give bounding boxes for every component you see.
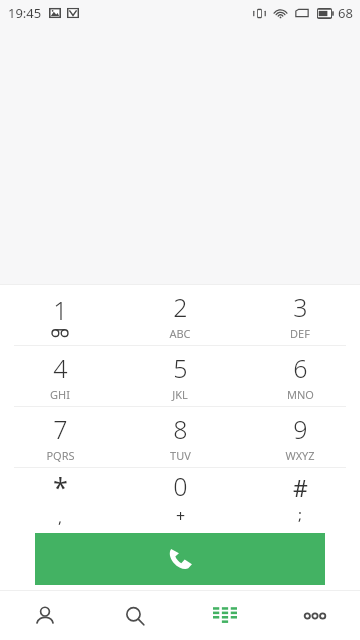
staticText: PQRS: [46, 448, 75, 463]
staticText: 3: [293, 290, 308, 324]
staticText: 8: [173, 412, 188, 446]
button[interactable]: *: [0, 468, 120, 528]
staticText: 0: [173, 469, 188, 503]
staticText: ,: [58, 507, 63, 527]
staticText: WXYZ: [285, 448, 315, 463]
staticText: MNO: [287, 387, 314, 402]
staticText: DEF: [290, 326, 310, 341]
button[interactable]: 4: [0, 346, 120, 406]
button[interactable]: 8: [120, 407, 240, 467]
staticText: *: [53, 469, 68, 506]
staticText: TUV: [170, 448, 191, 463]
button[interactable]: 9: [240, 407, 360, 467]
staticText: 4: [53, 351, 68, 385]
staticText: 6: [293, 351, 308, 385]
staticText: 9: [293, 412, 308, 446]
staticText: 7: [53, 412, 68, 446]
staticText: 5: [173, 351, 188, 385]
staticText: 19:45: [8, 4, 42, 22]
button[interactable]: Search: [90, 591, 180, 640]
button[interactable]: 5: [120, 346, 240, 406]
button[interactable]: 1: [0, 285, 120, 345]
staticText: +: [176, 505, 186, 527]
staticText: GHI: [50, 387, 70, 402]
staticText: ;: [298, 504, 303, 524]
button[interactable]: 0: [120, 468, 240, 528]
button[interactable]: #: [240, 468, 360, 528]
button[interactable]: 6: [240, 346, 360, 406]
button[interactable]: 7: [0, 407, 120, 467]
button[interactable]: Keypad: [180, 591, 270, 640]
button[interactable]: Contacts: [0, 591, 90, 640]
staticText: 2: [173, 290, 188, 324]
staticText: 1: [53, 293, 68, 327]
button[interactable]: More options: [270, 591, 360, 640]
button[interactable]: 3: [240, 285, 360, 345]
staticText: #: [293, 472, 308, 503]
button[interactable]: Call: [35, 533, 325, 585]
staticText: ABC: [169, 326, 191, 341]
button[interactable]: 2: [120, 285, 240, 345]
staticText: 68: [338, 4, 353, 22]
staticText: JKL: [172, 387, 188, 402]
